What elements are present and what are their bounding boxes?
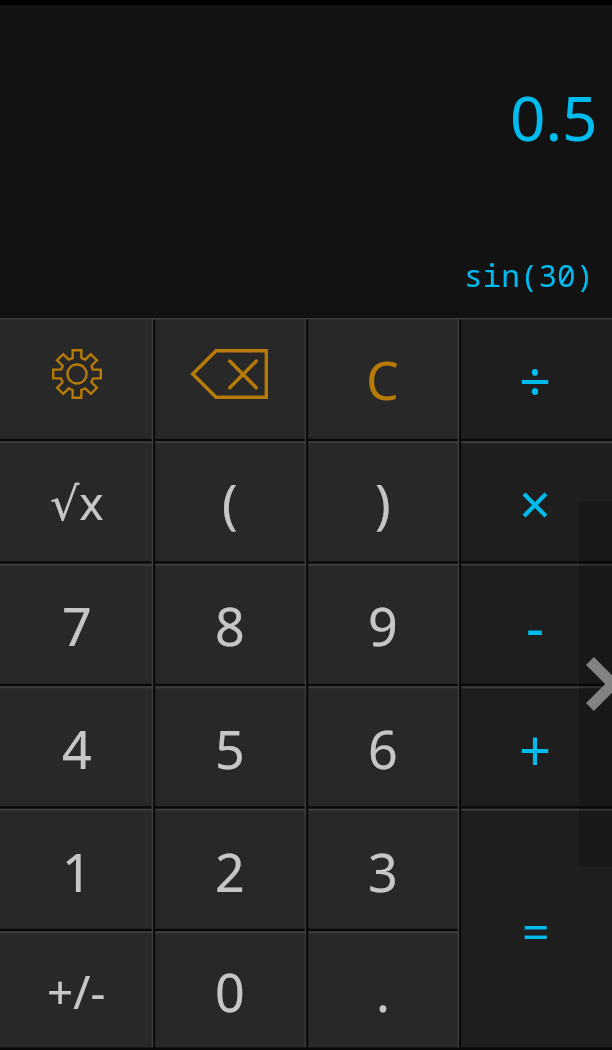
- button[interactable]: Clear: [306, 318, 459, 441]
- button[interactable]: Subtract: [459, 564, 612, 687]
- staticText: +: [519, 711, 552, 787]
- staticText: 5: [215, 713, 245, 784]
- button[interactable]: Equals: [459, 810, 612, 1050]
- staticText: (: [222, 467, 238, 538]
- staticText: 3: [368, 836, 398, 907]
- staticText: 0: [215, 956, 245, 1027]
- staticText: ): [375, 467, 391, 538]
- staticText: ×: [519, 465, 552, 541]
- staticText: 1: [62, 836, 92, 907]
- button[interactable]: Add: [459, 687, 612, 810]
- staticText: 6: [368, 713, 398, 784]
- button[interactable]: 7: [0, 564, 153, 687]
- button[interactable]: 9: [306, 564, 459, 687]
- button[interactable]: Divide: [459, 318, 612, 441]
- button[interactable]: Multiply: [459, 441, 612, 564]
- button[interactable]: 5: [153, 687, 306, 810]
- button[interactable]: .: [306, 933, 459, 1050]
- staticText: =: [522, 898, 550, 963]
- staticText: C: [366, 344, 399, 415]
- button[interactable]: 0: [153, 933, 306, 1050]
- staticText: 9: [368, 590, 398, 661]
- staticText: 0.5: [510, 75, 598, 159]
- staticText: 4: [62, 713, 92, 784]
- staticText: sin(30): [464, 254, 595, 296]
- button[interactable]: Settings: [0, 318, 153, 441]
- button[interactable]: 6: [306, 687, 459, 810]
- staticText: 8: [215, 590, 245, 661]
- button[interactable]: Backspace: [153, 318, 306, 441]
- button[interactable]: 8: [153, 564, 306, 687]
- staticText: .: [376, 956, 390, 1027]
- button[interactable]: (: [153, 441, 306, 564]
- staticText: 2: [215, 836, 245, 907]
- button[interactable]: Open history panel: [579, 501, 612, 867]
- button[interactable]: 4: [0, 687, 153, 810]
- button[interactable]: 2: [153, 810, 306, 933]
- button[interactable]: 3: [306, 810, 459, 933]
- staticText: ÷: [519, 342, 552, 418]
- button[interactable]: Square root: [0, 441, 153, 564]
- staticText: √x: [50, 471, 104, 534]
- staticText: 7: [62, 590, 92, 661]
- button[interactable]: Plus minus: [0, 933, 153, 1050]
- button[interactable]: 1: [0, 810, 153, 933]
- staticText: -: [526, 588, 545, 664]
- button[interactable]: ): [306, 441, 459, 564]
- staticText: +/-: [47, 960, 106, 1023]
